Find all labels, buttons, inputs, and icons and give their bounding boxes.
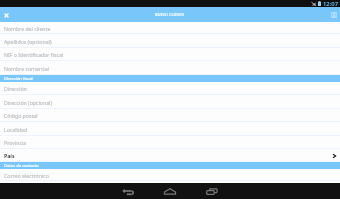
staticText: Correo electrónico <box>4 172 49 179</box>
button[interactable]: Correo electrónico <box>0 169 340 181</box>
button[interactable]: Nombre comercial <box>0 61 340 75</box>
staticText: Nombre comercial <box>4 65 49 72</box>
button[interactable]: Back <box>112 183 144 199</box>
staticText: Datos de contacto <box>4 163 39 168</box>
staticText: País <box>4 152 15 159</box>
button[interactable]: Código postal <box>0 109 340 122</box>
button[interactable]: Nombre del cliente <box>0 22 340 34</box>
staticText: Apellidos (opcional) <box>4 38 52 45</box>
staticText: Dirección <box>4 85 27 92</box>
button[interactable]: Dirección <box>0 82 340 95</box>
staticText: Código postal <box>4 112 38 119</box>
button[interactable]: Recents <box>196 183 228 199</box>
button[interactable]: Cerrar <box>0 7 12 22</box>
staticText: 12:07 <box>323 0 339 7</box>
staticText: NIF o Identificador fiscal <box>4 51 64 58</box>
button[interactable]: Apellidos (opcional) <box>0 34 340 48</box>
staticText: Nombre del cliente <box>4 25 51 32</box>
button[interactable]: NIF o Identificador fiscal <box>0 48 340 61</box>
staticText: Localidad <box>4 126 28 133</box>
button[interactable]: Guardar <box>328 7 340 22</box>
staticText: Dirección fiscal <box>4 76 33 81</box>
button[interactable]: País <box>0 149 340 162</box>
staticText: Dirección (opcional) <box>4 99 52 106</box>
staticText: NUEVO CLIENTE <box>155 12 185 17</box>
button[interactable]: Dirección (opcional) <box>0 95 340 109</box>
button[interactable]: Home <box>154 183 186 199</box>
button[interactable]: Provincia <box>0 136 340 149</box>
button[interactable]: Localidad <box>0 122 340 136</box>
staticText: Provincia <box>4 139 27 146</box>
